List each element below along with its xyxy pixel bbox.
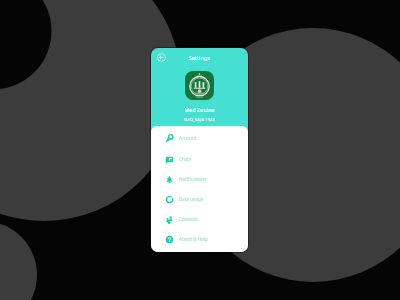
staticText: Notifications — [179, 176, 207, 182]
staticText: Chats — [179, 156, 192, 162]
staticText: Data usage — [179, 196, 204, 202]
button[interactable]: Notifications — [151, 169, 248, 189]
button[interactable]: Contacts — [151, 209, 248, 229]
staticText: SUO_RAJA 1949 — [151, 116, 248, 122]
button[interactable]: Chats — [151, 149, 248, 169]
staticText: Contacts — [179, 216, 198, 222]
staticText: Account — [179, 135, 197, 141]
button[interactable]: About & Help — [151, 229, 248, 249]
staticText: About & Help — [179, 236, 208, 242]
staticText: Med Zouine — [151, 106, 248, 113]
button[interactable]: Account — [151, 128, 248, 148]
button[interactable]: Back — [157, 53, 166, 62]
staticText: Settings — [151, 54, 248, 62]
button[interactable]: Data usage — [151, 189, 248, 209]
